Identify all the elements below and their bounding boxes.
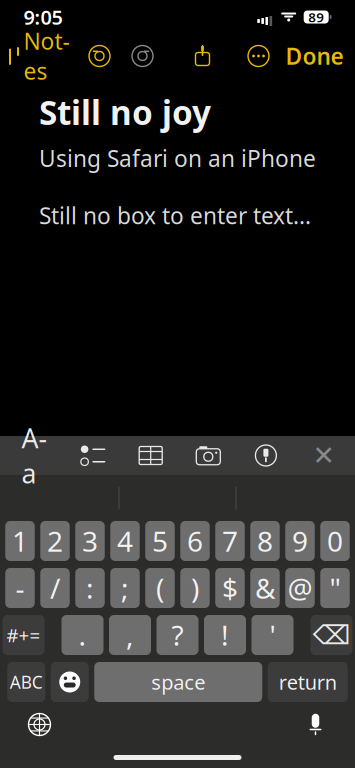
button[interactable]: Delete (310, 615, 352, 655)
button[interactable]: Table (137, 436, 165, 474)
button[interactable]: Emoji (51, 662, 89, 702)
button[interactable]: " (320, 568, 350, 608)
staticText: Aa (21, 420, 47, 491)
button[interactable]: , (109, 615, 151, 655)
button[interactable]: Next keyboard (20, 705, 58, 743)
button[interactable]: 5 (145, 521, 175, 561)
button[interactable]: ! (204, 615, 246, 655)
staticText: space (151, 669, 205, 695)
staticText: 5 (152, 522, 168, 560)
button[interactable]: Done (285, 33, 355, 79)
staticText: return (279, 669, 337, 695)
button[interactable]: : (75, 568, 105, 608)
button[interactable]: space (94, 662, 262, 702)
button[interactable]: 7 (215, 521, 245, 561)
button[interactable]: $ (215, 568, 245, 608)
button[interactable]: return (268, 662, 348, 702)
button[interactable]: 3 (75, 521, 105, 561)
staticText: . (78, 616, 86, 654)
button[interactable]: Text format (19, 436, 49, 474)
button[interactable]: Notes (0, 18, 69, 94)
staticText: ( (156, 569, 164, 607)
staticText: 4 (117, 522, 133, 560)
staticText: , (126, 616, 134, 654)
staticText: Done (285, 41, 343, 71)
staticText: @ (287, 569, 312, 607)
staticText: ✕ (312, 440, 334, 471)
staticText: : (86, 569, 94, 607)
staticText: Using Safari on an iPhone (39, 143, 316, 173)
staticText: 89 (308, 8, 324, 26)
button[interactable]: Checklist (79, 436, 107, 474)
button[interactable]: & (250, 568, 280, 608)
button[interactable]: @ (285, 568, 315, 608)
staticText: Still no box to enter text... (39, 200, 311, 230)
button[interactable]: Undo (84, 41, 114, 71)
staticText: Still no joy (39, 90, 211, 134)
button[interactable]: 0 (320, 521, 350, 561)
button[interactable]: 8 (250, 521, 280, 561)
staticText: - (15, 569, 24, 607)
staticText: Notes (23, 26, 69, 86)
staticText: $ (222, 569, 238, 607)
staticText: ; (121, 569, 129, 607)
staticText: 9:05 (23, 4, 62, 30)
button[interactable]: 6 (180, 521, 210, 561)
button[interactable]: 4 (110, 521, 140, 561)
staticText: ABC (10, 670, 43, 693)
staticText: 3 (82, 522, 98, 560)
button[interactable]: ( (145, 568, 175, 608)
button[interactable]: ) (180, 568, 210, 608)
button[interactable]: Share (187, 41, 217, 71)
button[interactable]: More options (243, 41, 273, 71)
staticText: ⌫ (312, 620, 350, 650)
staticText: ? (171, 616, 183, 654)
button[interactable]: ABC (7, 662, 45, 702)
staticText: 6 (187, 522, 203, 560)
staticText: #+= (6, 623, 40, 647)
button[interactable]: 2 (40, 521, 70, 561)
staticText: / (50, 569, 60, 607)
staticText: 9 (292, 522, 308, 560)
staticText: 2 (47, 522, 63, 560)
button[interactable]: #+= (2, 615, 44, 655)
button[interactable]: 1 (5, 521, 35, 561)
staticText: ' (269, 616, 275, 654)
button[interactable]: Redo (127, 41, 157, 71)
button[interactable]: ' (251, 615, 293, 655)
button[interactable]: / (40, 568, 70, 608)
button[interactable]: Camera (194, 436, 222, 474)
staticText: ! (221, 616, 229, 654)
button[interactable]: - (5, 568, 35, 608)
button[interactable]: 9 (285, 521, 315, 561)
button[interactable]: . (61, 615, 103, 655)
staticText: & (255, 569, 275, 607)
button[interactable]: Dictation (296, 704, 334, 744)
staticText: ) (191, 569, 199, 607)
button[interactable]: Hide keyboard (309, 436, 337, 474)
button[interactable]: Markup (252, 436, 280, 474)
staticText: " (329, 569, 340, 607)
staticText: 7 (222, 522, 238, 560)
staticText: 8 (257, 522, 273, 560)
button[interactable]: ? (156, 615, 198, 655)
staticText: 1 (12, 522, 28, 560)
staticText: 0 (327, 522, 343, 560)
button[interactable]: ; (110, 568, 140, 608)
